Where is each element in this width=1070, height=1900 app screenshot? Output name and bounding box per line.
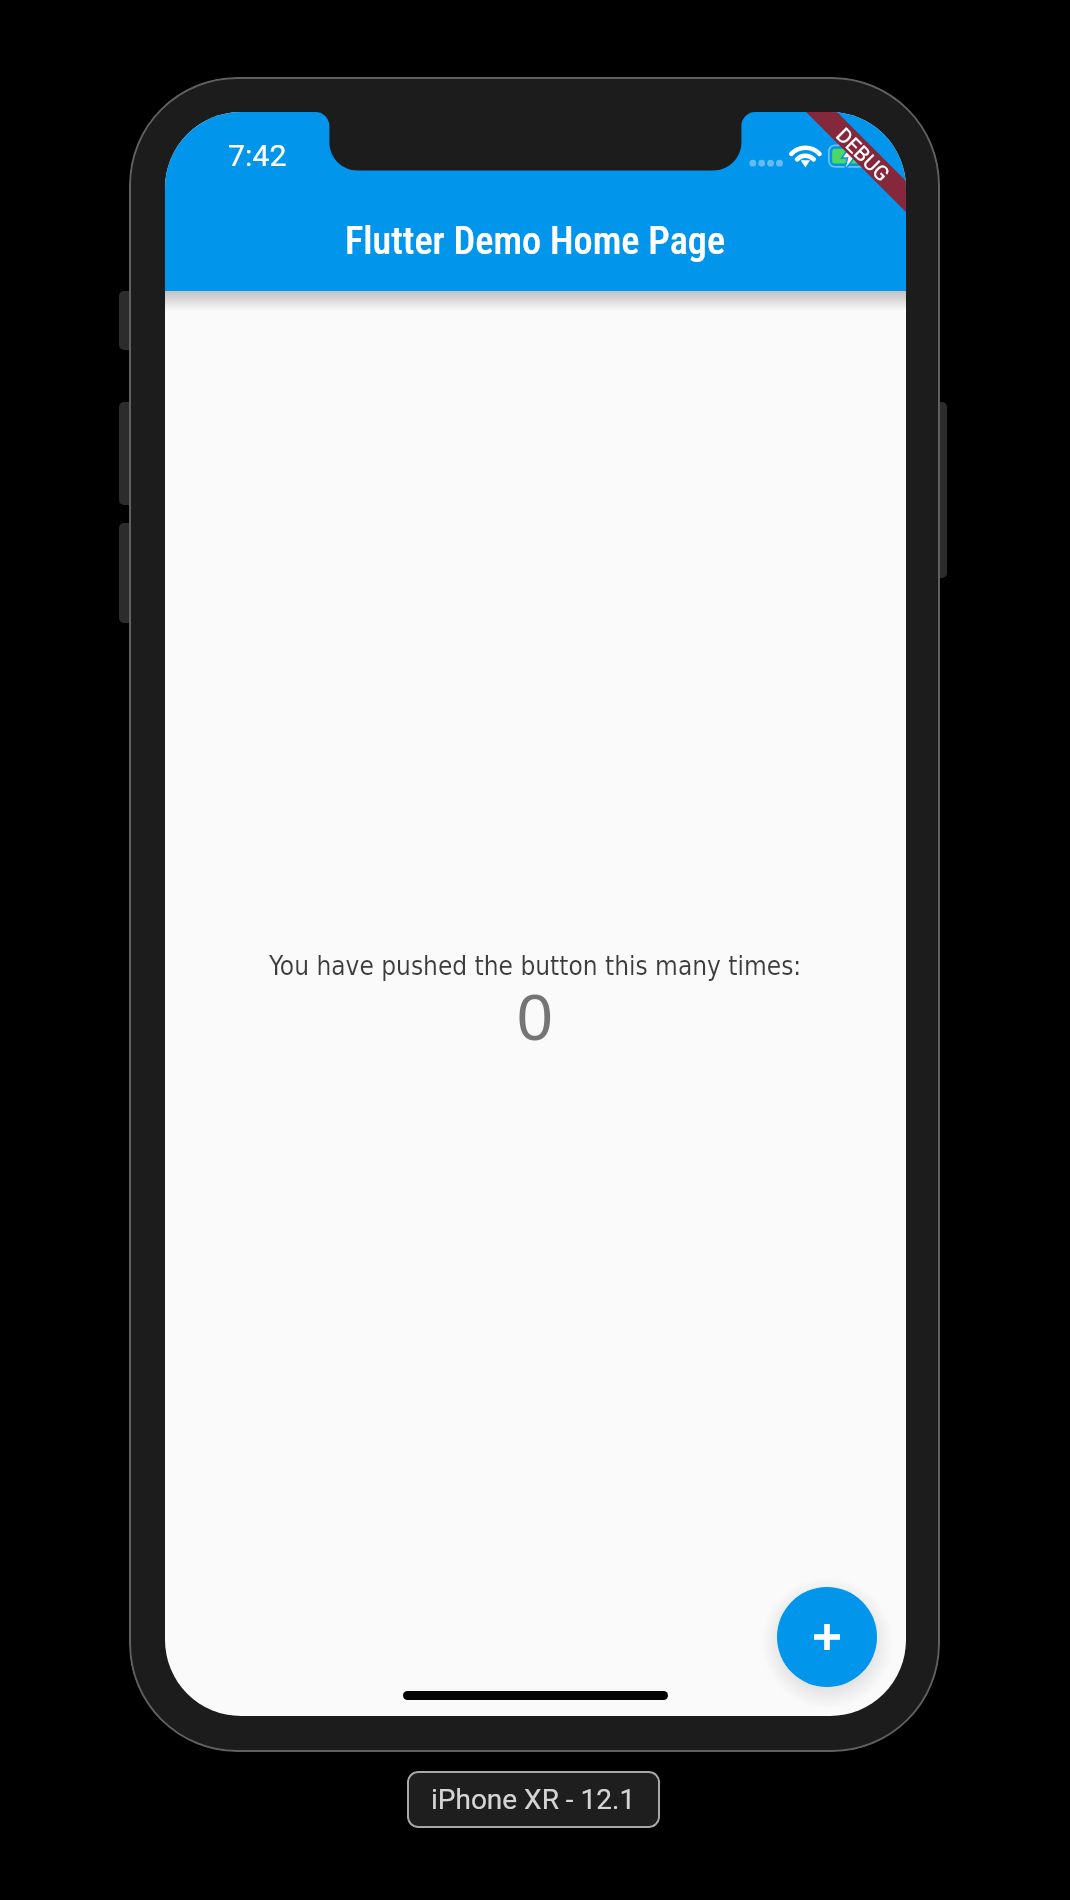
staticText: 7:42 <box>228 138 287 174</box>
staticText: 0 <box>517 982 553 1054</box>
staticText: Flutter Demo Home Page <box>345 218 726 263</box>
button[interactable]: iPhone XR - 12.1 <box>407 1771 660 1828</box>
staticText: DEBUG <box>831 123 895 187</box>
button[interactable]: Add <box>777 1587 877 1687</box>
staticText: iPhone XR - 12.1 <box>431 1783 636 1816</box>
staticText: You have pushed the button this many tim… <box>269 951 802 981</box>
